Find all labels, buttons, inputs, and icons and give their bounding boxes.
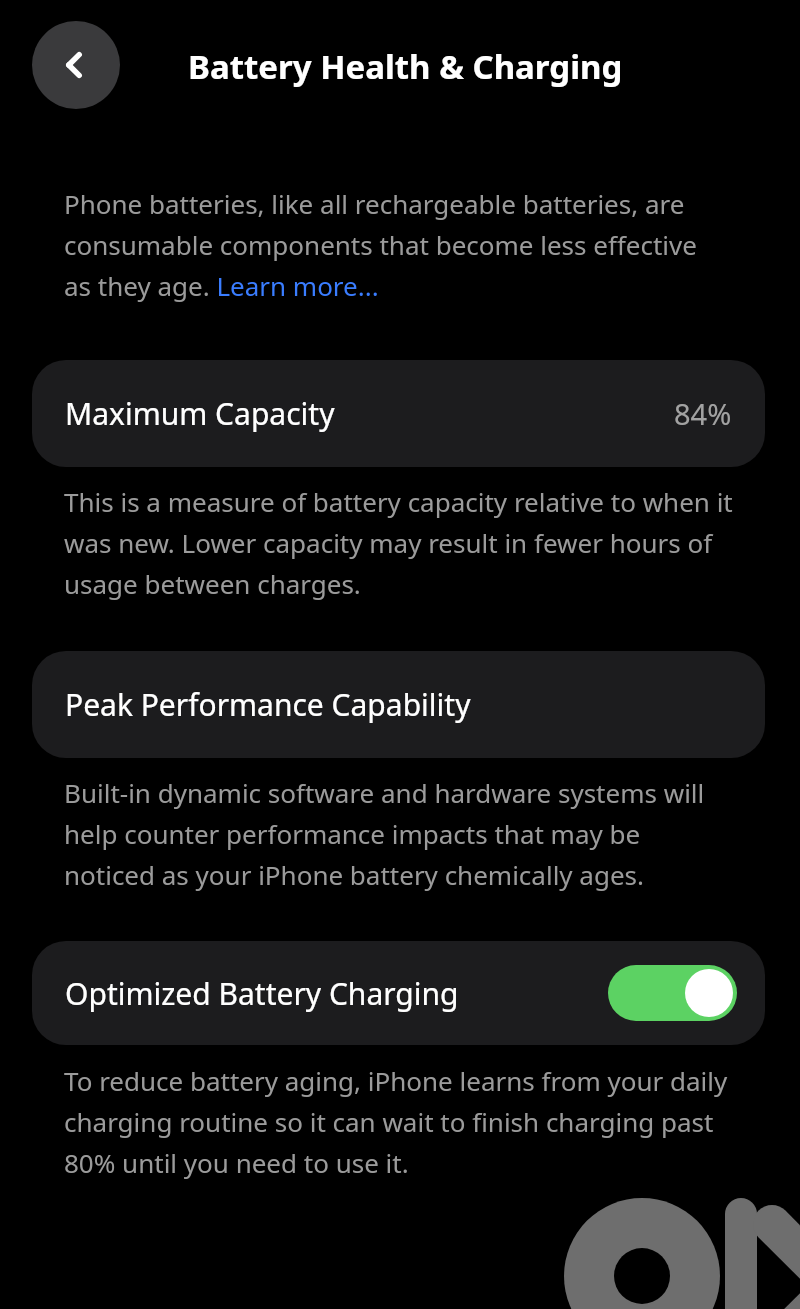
button[interactable]: Peak Performance Capability [32,651,765,758]
staticText: Peak Performance Capability [65,684,471,725]
button[interactable]: Optimized Battery Charging [32,941,765,1045]
staticText: Maximum Capacity [65,393,335,434]
button[interactable]: Back [32,21,120,109]
button[interactable]: Optimized Battery Charging toggle, on [608,965,737,1021]
staticText: To reduce battery aging, iPhone learns f… [64,1063,744,1181]
staticText: This is a measure of battery capacity re… [64,484,734,602]
staticText: Battery Health & Charging [188,44,623,89]
staticText: Phone batteries, like all rechargeable b… [64,186,724,304]
button[interactable]: Maximum Capacity [32,360,765,467]
staticText: 84% [674,394,732,433]
staticText: Optimized Battery Charging [65,973,459,1014]
staticText: Built-in dynamic software and hardware s… [64,775,734,893]
